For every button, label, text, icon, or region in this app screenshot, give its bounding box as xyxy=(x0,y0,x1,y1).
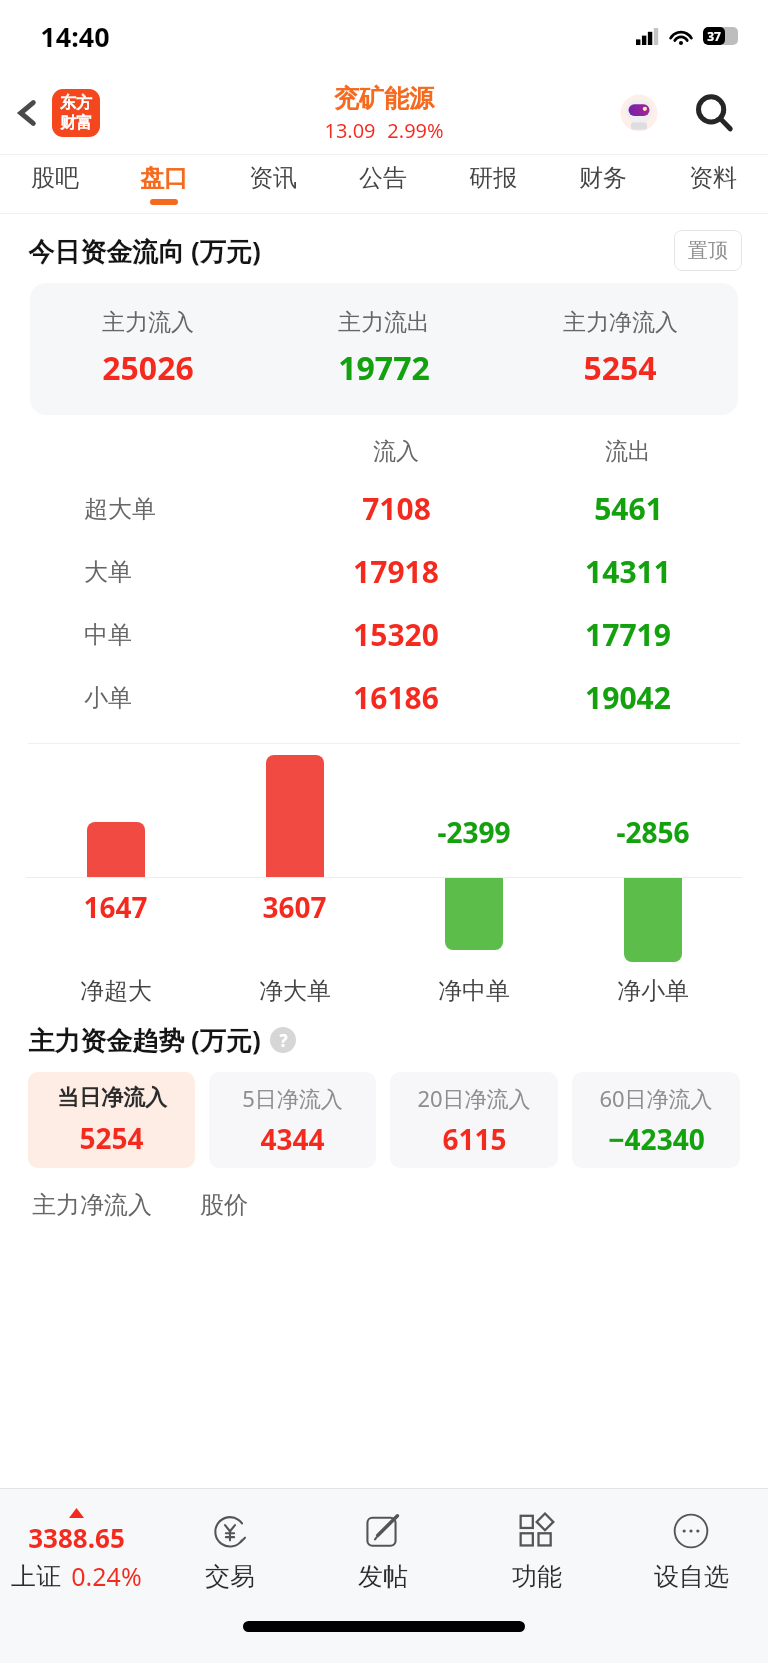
staticText: 20日净流入 xyxy=(417,1083,531,1113)
staticText: 研报 xyxy=(469,163,517,193)
staticText: 今日资金流向 (万元) xyxy=(28,233,261,269)
staticText: 1647 xyxy=(83,888,148,926)
button[interactable]: 盘口 xyxy=(109,155,218,213)
staticText: 发帖 xyxy=(358,1561,408,1592)
staticText: 股价 xyxy=(200,1190,248,1220)
staticText: 盘口 xyxy=(140,163,188,193)
staticText: 中单 xyxy=(84,620,132,650)
staticText: 3607 xyxy=(262,888,327,926)
staticText: 2.99% xyxy=(387,117,444,144)
staticText: 16186 xyxy=(353,677,439,718)
button[interactable]: 研报 xyxy=(438,155,548,213)
staticText: 净小单 xyxy=(617,976,689,1006)
staticText: -2856 xyxy=(616,813,690,851)
staticText: 17918 xyxy=(353,551,439,592)
staticText: 3388.65 xyxy=(28,1520,125,1555)
button[interactable]: Search xyxy=(684,83,744,143)
staticText: 资料 xyxy=(689,163,737,193)
staticText: 60日净流入 xyxy=(599,1083,713,1113)
staticText: 5254 xyxy=(79,1119,144,1157)
staticText: 小单 xyxy=(84,683,132,713)
staticText: 净超大 xyxy=(80,976,152,1006)
staticText: 主力资金趋势 (万元) xyxy=(28,1022,261,1058)
staticText: 25026 xyxy=(102,346,194,390)
staticText: 东方 xyxy=(60,93,92,113)
button[interactable]: 置顶 xyxy=(674,230,742,271)
staticText: 股吧 xyxy=(31,163,79,193)
staticText: 流入 xyxy=(373,437,419,466)
button[interactable]: 资料 xyxy=(658,155,768,213)
button[interactable]: East Money logo xyxy=(52,89,100,137)
staticText: 19042 xyxy=(585,677,671,718)
staticText: 主力流出 xyxy=(338,308,430,337)
staticText: 7108 xyxy=(362,488,431,529)
staticText: 15320 xyxy=(353,614,439,655)
button[interactable]: 财务 xyxy=(548,155,658,213)
button[interactable]: 设自选 xyxy=(614,1489,768,1611)
staticText: 17719 xyxy=(585,614,671,655)
staticText: 13.09 xyxy=(324,117,376,144)
staticText: 兖矿能源 xyxy=(334,83,434,114)
staticText: ? xyxy=(279,1029,288,1052)
button[interactable]: 3388.65 xyxy=(0,1489,153,1611)
staticText: 超大单 xyxy=(84,494,156,524)
button[interactable]: 超大单 xyxy=(24,477,744,540)
staticText: 14:40 xyxy=(40,18,110,55)
button[interactable]: Help xyxy=(270,1027,296,1053)
button[interactable]: 大单 xyxy=(24,540,744,603)
button[interactable]: 20日净流入 xyxy=(390,1072,558,1168)
button[interactable]: 主力流入 xyxy=(30,283,738,415)
staticText: 14311 xyxy=(585,551,671,592)
staticText: 设自选 xyxy=(654,1561,729,1592)
staticText: 大单 xyxy=(84,557,132,587)
button[interactable]: 股吧 xyxy=(0,155,109,213)
button[interactable]: 当日净流入 xyxy=(28,1072,195,1168)
staticText: 置顶 xyxy=(688,238,728,263)
staticText: 5254 xyxy=(583,346,657,390)
staticText: 主力净流入 xyxy=(563,308,678,337)
staticText: 公告 xyxy=(359,163,407,193)
staticText: 0.24% xyxy=(71,1559,142,1593)
button[interactable]: 公告 xyxy=(328,155,438,213)
staticText: 6115 xyxy=(442,1120,507,1158)
staticText: 资讯 xyxy=(249,163,297,193)
staticText: 19772 xyxy=(338,346,430,390)
button[interactable]: 中单 xyxy=(24,603,744,666)
staticText: 净大单 xyxy=(259,976,331,1006)
button[interactable]: Back xyxy=(4,89,52,137)
staticText: 5461 xyxy=(594,488,663,529)
button[interactable]: 小单 xyxy=(24,666,744,729)
staticText: 功能 xyxy=(512,1561,562,1592)
staticText: 5日净流入 xyxy=(242,1083,343,1113)
button[interactable]: 功能 xyxy=(460,1489,614,1611)
staticText: 当日净流入 xyxy=(57,1084,167,1112)
staticText: 净中单 xyxy=(438,976,510,1006)
staticText: -2399 xyxy=(437,813,511,851)
staticText: 流出 xyxy=(605,437,651,466)
staticText: 交易 xyxy=(205,1561,255,1592)
staticText: −42340 xyxy=(608,1120,705,1158)
staticText: 上证 xyxy=(11,1561,61,1592)
staticText: 财务 xyxy=(579,163,627,193)
button[interactable]: 发帖 xyxy=(306,1489,460,1611)
button[interactable]: 资讯 xyxy=(218,155,328,213)
staticText: 4344 xyxy=(260,1120,325,1158)
button[interactable]: 60日净流入 xyxy=(572,1072,740,1168)
staticText: 37 xyxy=(707,28,721,44)
button[interactable]: 5日净流入 xyxy=(209,1072,376,1168)
button[interactable]: AI assistant xyxy=(614,88,664,138)
staticText: 主力净流入 xyxy=(32,1190,152,1220)
button[interactable]: 交易 xyxy=(153,1489,306,1611)
staticText: 主力流入 xyxy=(102,308,194,337)
staticText: 财富 xyxy=(60,113,92,133)
